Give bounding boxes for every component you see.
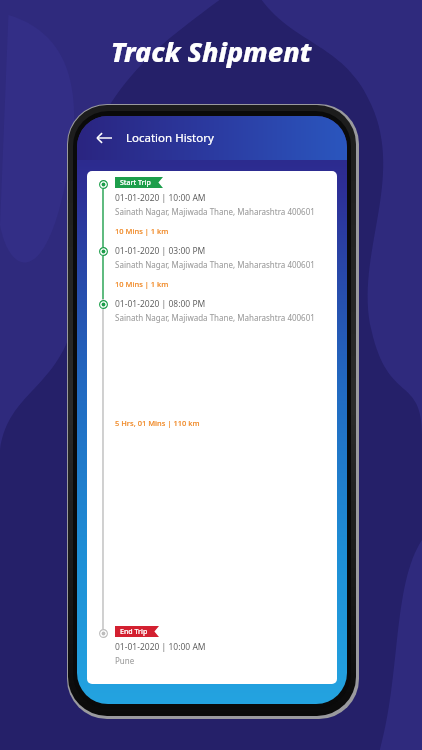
staticText: 10 Mins | 1 km (115, 279, 169, 289)
staticText: 10 Mins | 1 km (115, 226, 169, 236)
button[interactable]: 01-01-2020 | 03:00 PM (87, 245, 337, 270)
button[interactable]: End Trip (87, 626, 337, 666)
staticText: End Trip (120, 627, 148, 637)
staticText: Sainath Nagar, Majiwada Thane, Maharasht… (115, 259, 315, 270)
staticText: Pune (115, 655, 135, 666)
staticText: 01-01-2020 | 03:00 PM (115, 245, 206, 257)
button[interactable]: Back (91, 125, 117, 151)
staticText: Track Shipment (0, 33, 422, 70)
staticText: Sainath Nagar, Majiwada Thane, Maharasht… (115, 206, 315, 217)
staticText: Location History (126, 130, 214, 146)
staticText: Start Trip (120, 178, 151, 188)
staticText: Sainath Nagar, Majiwada Thane, Maharasht… (115, 312, 315, 323)
button[interactable]: Start Trip (87, 177, 337, 217)
staticText: 01-01-2020 | 10:00 AM (115, 192, 206, 204)
button[interactable]: 01-01-2020 | 08:00 PM (87, 298, 337, 323)
staticText: 5 Hrs, 01 Mins | 110 km (115, 418, 200, 428)
staticText: 01-01-2020 | 08:00 PM (115, 298, 206, 310)
staticText: 01-01-2020 | 10:00 AM (115, 641, 206, 653)
